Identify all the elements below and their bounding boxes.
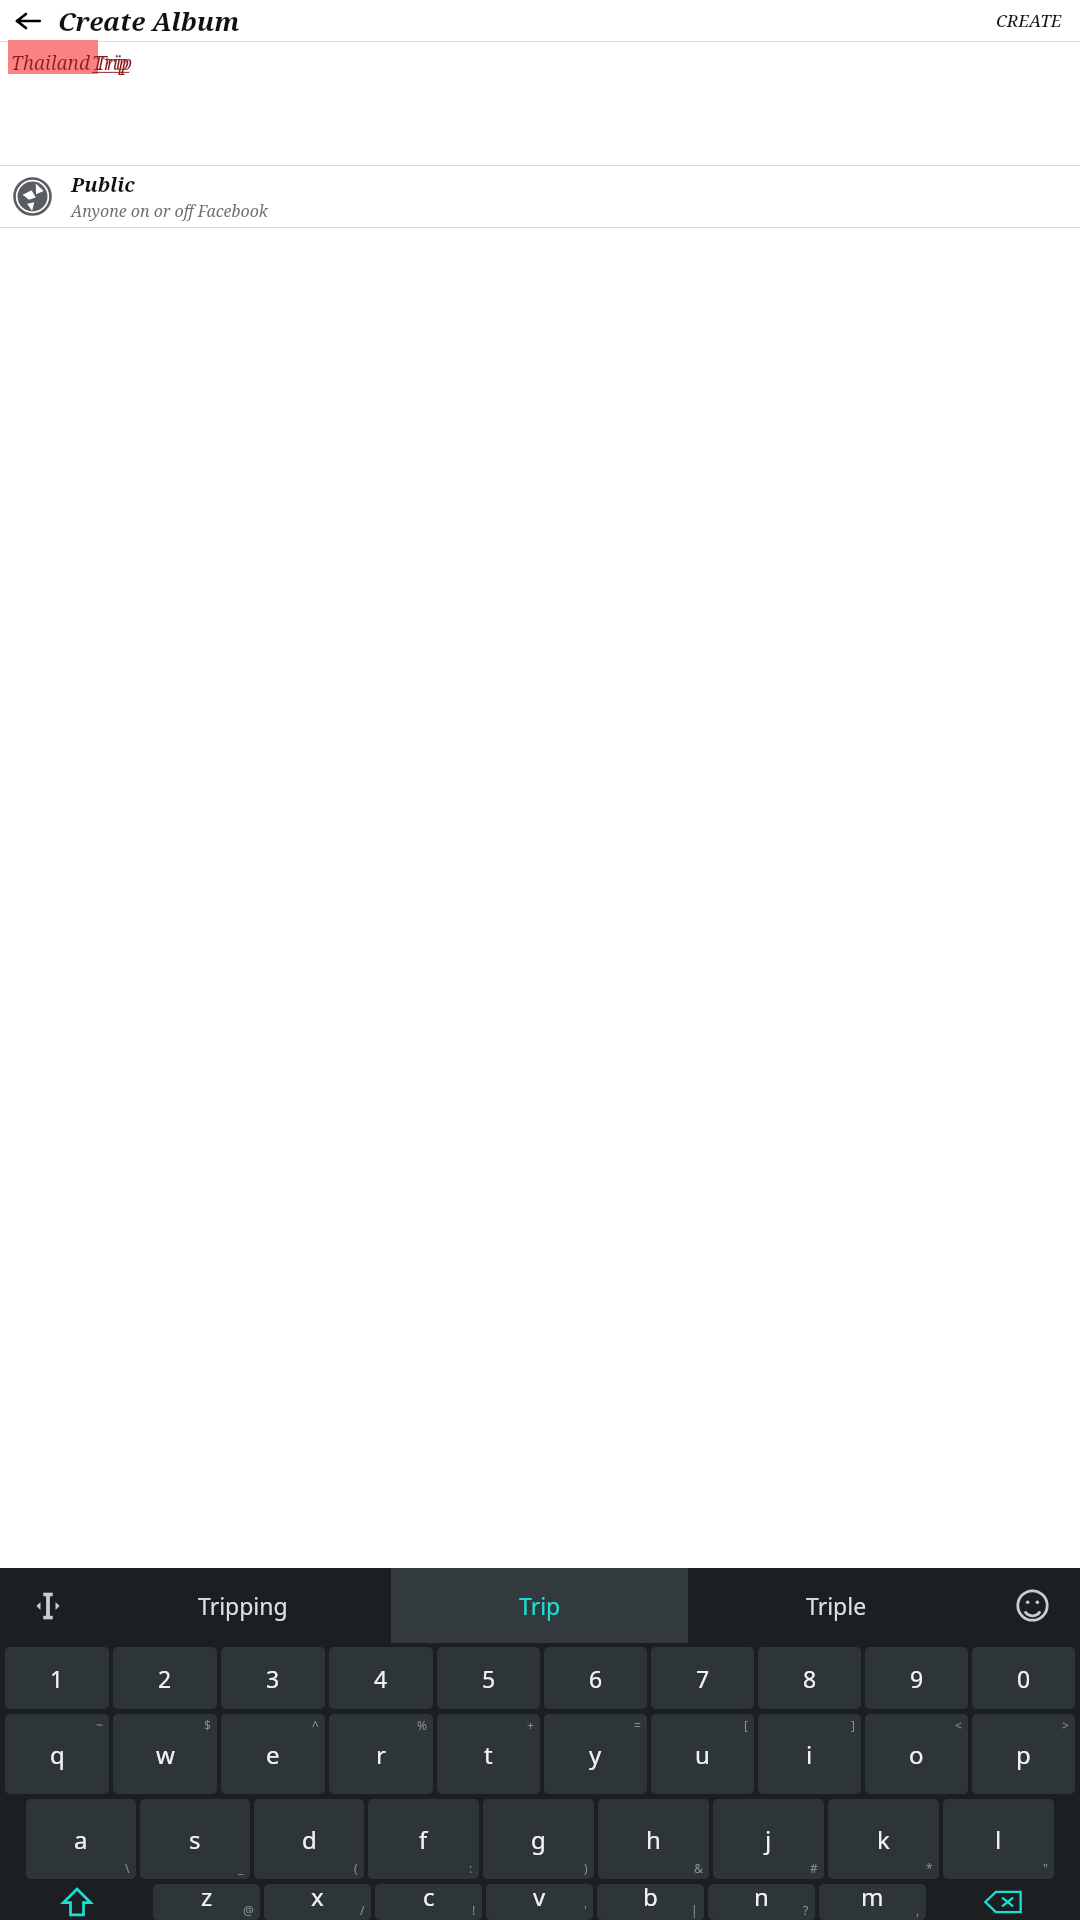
button[interactable]: o — [865, 1714, 968, 1794]
staticText: CREATE — [996, 9, 1062, 32]
staticText: Anyone on or off Facebook — [71, 200, 268, 222]
staticText: a — [74, 1823, 88, 1856]
staticText: n — [754, 1884, 769, 1913]
staticText: h — [646, 1823, 661, 1856]
staticText: Thailand Trip — [11, 50, 133, 76]
staticText: ^ — [312, 1717, 319, 1733]
staticText: i — [806, 1738, 813, 1771]
button[interactable]: u — [651, 1714, 754, 1794]
button[interactable]: p — [972, 1714, 1075, 1794]
staticText: 8 — [803, 1663, 817, 1694]
staticText: x — [311, 1884, 324, 1913]
button[interactable]: 9 — [865, 1647, 968, 1709]
staticText: d — [302, 1823, 317, 1856]
button[interactable]: r — [329, 1714, 433, 1794]
button[interactable]: Tripping — [95, 1568, 391, 1643]
staticText: Tripping — [198, 1590, 288, 1621]
staticText: < — [955, 1717, 962, 1733]
staticText: & — [694, 1860, 703, 1876]
button[interactable]: m — [819, 1884, 926, 1920]
button[interactable]: Backspace — [930, 1884, 1075, 1920]
button[interactable]: 7 — [651, 1647, 754, 1709]
button[interactable]: a — [26, 1799, 136, 1879]
staticText: 9 — [910, 1663, 924, 1694]
button[interactable]: c — [375, 1884, 482, 1920]
staticText: Triple — [806, 1590, 867, 1621]
button[interactable]: w — [113, 1714, 217, 1794]
button[interactable]: i — [758, 1714, 861, 1794]
staticText: c — [423, 1884, 435, 1913]
staticText: > — [1062, 1717, 1069, 1733]
staticText: ( — [354, 1860, 358, 1876]
button[interactable]: Triple — [688, 1568, 985, 1643]
button[interactable]: k — [828, 1799, 939, 1879]
button[interactable]: Move cursor — [0, 1568, 95, 1643]
staticText: $ — [204, 1717, 211, 1733]
staticText: 2 — [158, 1663, 172, 1694]
staticText: q — [50, 1738, 65, 1771]
staticText: [ — [744, 1717, 748, 1733]
staticText: ] — [851, 1717, 855, 1733]
staticText: = — [634, 1717, 641, 1733]
staticText: z — [201, 1884, 213, 1913]
staticText: 6 — [589, 1663, 603, 1694]
staticText: w — [156, 1738, 175, 1771]
staticText: Public — [71, 171, 135, 198]
staticText: : — [469, 1860, 473, 1876]
button[interactable]: g — [483, 1799, 594, 1879]
staticText: l — [995, 1823, 1002, 1856]
button[interactable]: CREATE — [990, 3, 1068, 38]
staticText: m — [861, 1884, 884, 1913]
button[interactable]: b — [597, 1884, 704, 1920]
staticText: u — [695, 1738, 710, 1771]
staticText: j — [765, 1823, 772, 1856]
button[interactable]: z — [153, 1884, 260, 1920]
staticText: 0 — [1017, 1663, 1031, 1694]
button[interactable]: j — [713, 1799, 824, 1879]
staticText: e — [266, 1738, 280, 1771]
button[interactable]: q — [5, 1714, 109, 1794]
staticText: Trip — [92, 50, 130, 76]
button[interactable]: t — [437, 1714, 540, 1794]
staticText: 3 — [266, 1663, 280, 1694]
button[interactable]: Emoji — [985, 1568, 1080, 1643]
staticText: s — [189, 1823, 201, 1856]
button[interactable]: 3 — [221, 1647, 325, 1709]
button[interactable]: l — [943, 1799, 1054, 1879]
staticText: 7 — [696, 1663, 710, 1694]
staticText: 1 — [50, 1663, 64, 1694]
staticText: " — [1043, 1860, 1048, 1876]
staticText: + — [527, 1717, 534, 1733]
button[interactable]: d — [254, 1799, 364, 1879]
button[interactable]: 6 — [544, 1647, 647, 1709]
button[interactable]: 1 — [5, 1647, 109, 1709]
button[interactable]: 5 — [437, 1647, 540, 1709]
button[interactable]: 8 — [758, 1647, 861, 1709]
button[interactable]: 0 — [972, 1647, 1075, 1709]
button[interactable]: Back — [10, 3, 46, 39]
button[interactable]: f — [368, 1799, 479, 1879]
button[interactable]: Shift — [5, 1884, 149, 1920]
staticText: b — [643, 1884, 658, 1913]
button[interactable]: Trip — [391, 1568, 688, 1643]
staticText: / — [360, 1902, 365, 1918]
staticText: 4 — [374, 1663, 388, 1694]
staticText: o — [909, 1738, 924, 1771]
staticText: ~ — [96, 1717, 103, 1733]
button[interactable]: Public — [0, 166, 1080, 227]
button[interactable]: x — [264, 1884, 371, 1920]
staticText: @ — [243, 1902, 254, 1918]
staticText: 5 — [482, 1663, 496, 1694]
button[interactable]: 4 — [329, 1647, 433, 1709]
button[interactable]: v — [486, 1884, 593, 1920]
button[interactable]: e — [221, 1714, 325, 1794]
staticText: v — [533, 1884, 546, 1913]
button[interactable]: y — [544, 1714, 647, 1794]
staticText: ? — [803, 1902, 809, 1918]
button[interactable]: h — [598, 1799, 709, 1879]
staticText: t — [484, 1738, 493, 1771]
button[interactable]: s — [140, 1799, 250, 1879]
button[interactable]: 2 — [113, 1647, 217, 1709]
button[interactable]: n — [708, 1884, 815, 1920]
staticText: ) — [584, 1860, 588, 1876]
